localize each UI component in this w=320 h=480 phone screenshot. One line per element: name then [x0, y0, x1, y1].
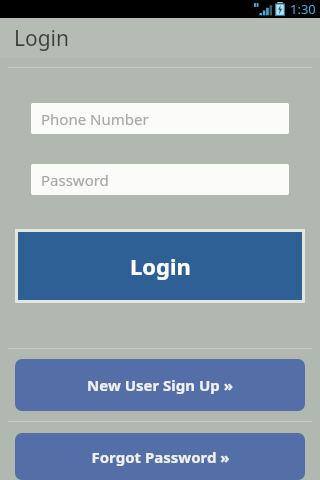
staticText: Phone Number [41, 109, 149, 129]
button[interactable]: New User Sign Up » [15, 359, 305, 411]
staticText: Password [41, 170, 109, 190]
button[interactable]: Forgot Password » [15, 433, 305, 480]
staticText: Forgot Password » [91, 447, 230, 467]
button[interactable]: Phone Number [31, 103, 289, 134]
staticText: 1:30 [290, 0, 316, 18]
button[interactable]: Password [31, 164, 289, 195]
button[interactable]: Login [18, 232, 302, 300]
staticText: Login [14, 24, 70, 53]
staticText: New User Sign Up » [87, 375, 233, 395]
staticText: Login [130, 251, 191, 281]
